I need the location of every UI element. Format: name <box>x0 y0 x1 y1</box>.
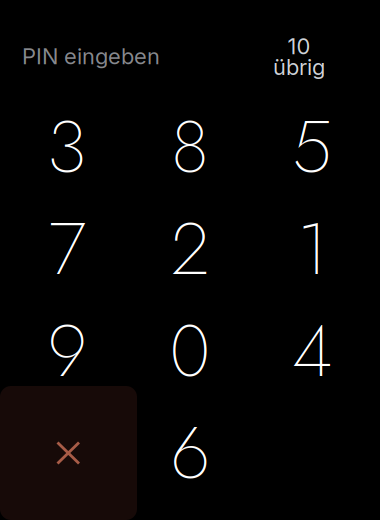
staticText: PIN eingeben <box>22 43 160 70</box>
button[interactable]: 1 <box>249 198 375 300</box>
staticText: 8 <box>171 95 209 199</box>
button[interactable]: 4 <box>249 300 375 402</box>
button[interactable]: 0 <box>127 300 253 402</box>
staticText: 9 <box>47 299 86 403</box>
staticText: 0 <box>169 299 210 403</box>
button[interactable]: 3 <box>4 96 130 198</box>
staticText: 6 <box>170 401 209 505</box>
staticText: 2 <box>171 197 209 301</box>
button[interactable]: 7 <box>4 198 130 300</box>
button[interactable]: Löschen <box>0 386 137 520</box>
staticText: 1 <box>297 197 327 301</box>
button[interactable]: 5 <box>249 96 375 198</box>
staticText: 4 <box>292 299 332 403</box>
staticText: 5 <box>292 95 332 199</box>
staticText: übrig <box>273 54 325 80</box>
staticText: 10 <box>287 33 310 60</box>
button[interactable]: 2 <box>127 198 253 300</box>
staticText: 7 <box>48 197 85 301</box>
button[interactable]: 9 <box>4 300 130 402</box>
button[interactable]: 6 <box>127 402 253 504</box>
staticText: 3 <box>47 95 87 199</box>
button[interactable]: 8 <box>127 96 253 198</box>
